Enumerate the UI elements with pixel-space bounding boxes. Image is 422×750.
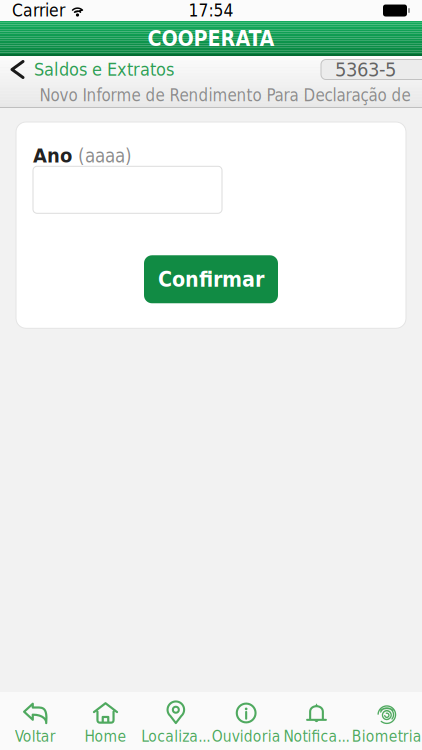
staticText: COOPERATA bbox=[147, 26, 274, 51]
button[interactable]: 5363-5 bbox=[321, 59, 422, 79]
staticText: Localiza... bbox=[141, 727, 210, 745]
button[interactable]: Localiza... bbox=[141, 689, 211, 750]
staticText: Ano bbox=[33, 144, 72, 167]
button[interactable]: Ouvidoria bbox=[211, 689, 281, 750]
staticText: Voltar bbox=[15, 727, 56, 745]
staticText: Saldos e Extratos bbox=[34, 59, 174, 80]
staticText: 17:54 bbox=[188, 0, 233, 21]
button[interactable]: Confirmar bbox=[144, 255, 278, 303]
staticText: Home bbox=[84, 727, 126, 745]
staticText: Carrier bbox=[12, 0, 65, 21]
staticText: 5363-5 bbox=[335, 58, 396, 81]
button[interactable]: Saldos e Extratos bbox=[0, 55, 174, 84]
button[interactable]: Home bbox=[70, 689, 141, 750]
staticText: Biometria bbox=[352, 727, 422, 745]
staticText: Novo Informe de Rendimento Para Declaraç… bbox=[39, 86, 410, 105]
button[interactable]: Notifica... bbox=[281, 689, 352, 750]
staticText: (aaaa) bbox=[78, 145, 132, 167]
staticText: Confirmar bbox=[158, 267, 264, 292]
staticText: Ouvidoria bbox=[212, 727, 281, 745]
staticText: Notifica... bbox=[283, 727, 349, 745]
button[interactable]: Voltar bbox=[0, 689, 70, 750]
button[interactable]: Biometria bbox=[352, 689, 422, 750]
